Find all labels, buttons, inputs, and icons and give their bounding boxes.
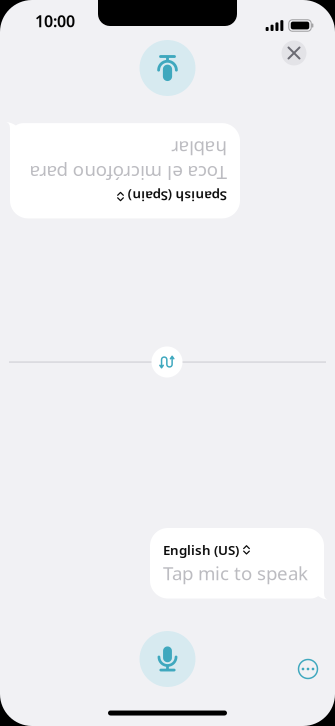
- button[interactable]: English microphone: [139, 631, 195, 687]
- button[interactable]: More options: [289, 650, 327, 688]
- button[interactable]: Swap languages: [150, 345, 184, 379]
- staticText: English (US): [163, 541, 239, 559]
- staticText: Tap mic to speak: [163, 561, 308, 585]
- staticText: 10:00: [35, 10, 75, 32]
- button[interactable]: Close: [277, 36, 311, 70]
- staticText: Toca el micrófono para hablar: [19, 154, 216, 204]
- button[interactable]: Spanish microphone: [139, 40, 195, 96]
